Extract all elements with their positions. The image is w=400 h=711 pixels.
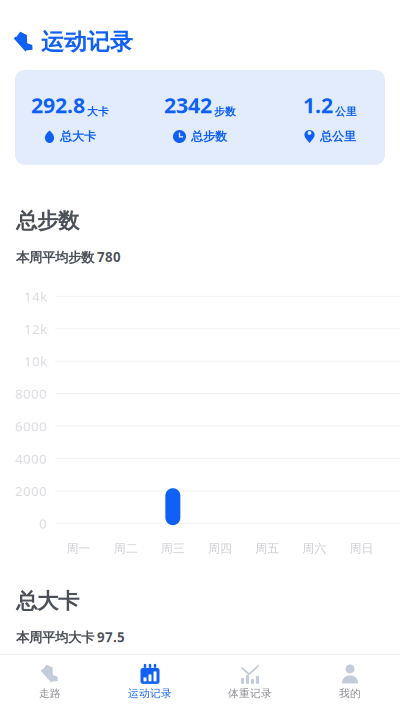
staticText: 本周平均步数 780 <box>16 248 121 266</box>
staticText: 8000 <box>15 385 47 402</box>
staticText: 12k <box>24 320 47 338</box>
staticText: 2342 <box>164 91 212 119</box>
button[interactable]: 走路 <box>0 664 100 700</box>
staticText: 总公里 <box>320 129 356 144</box>
staticText: 292.8 <box>31 91 85 119</box>
staticText: 总大卡 <box>16 588 79 614</box>
staticText: 周一 <box>67 541 91 556</box>
staticText: 总大卡 <box>60 129 96 144</box>
staticText: 周二 <box>114 541 138 556</box>
staticText: 周五 <box>255 541 279 556</box>
staticText: 运动记录 <box>128 687 172 700</box>
staticText: 走路 <box>39 687 61 700</box>
staticText: 总步数 <box>16 208 79 234</box>
staticText: 4000 <box>15 450 47 467</box>
staticText: 0 <box>39 514 47 532</box>
staticText: 14k <box>24 287 47 305</box>
staticText: 总步数 <box>191 129 227 144</box>
staticText: 运动记录 <box>41 28 133 56</box>
staticText: 体重记录 <box>228 687 272 700</box>
staticText: 周四 <box>208 541 232 556</box>
staticText: 周日 <box>349 541 373 556</box>
staticText: 6000 <box>15 417 47 435</box>
staticText: 步数 <box>214 105 236 118</box>
staticText: 周三 <box>161 541 185 556</box>
staticText: 周六 <box>302 541 326 556</box>
staticText: 公里 <box>335 105 357 118</box>
staticText: 10k <box>24 352 47 370</box>
button[interactable]: 运动记录 <box>100 664 200 700</box>
staticText: 本周平均大卡 97.5 <box>16 628 125 646</box>
button[interactable]: 我的 <box>300 664 400 700</box>
staticText: 我的 <box>339 687 361 700</box>
staticText: 2000 <box>15 482 47 500</box>
staticText: 1.2 <box>303 91 333 119</box>
button[interactable]: 体重记录 <box>200 664 300 700</box>
staticText: 大卡 <box>87 105 109 118</box>
